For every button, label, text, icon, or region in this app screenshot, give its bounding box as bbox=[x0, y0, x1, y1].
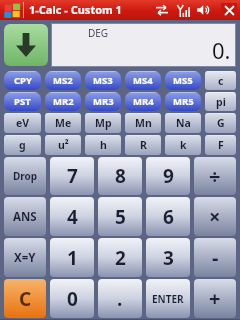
staticText: c bbox=[218, 74, 224, 88]
staticText: 1-Calc - Custom 1 bbox=[29, 2, 122, 17]
staticText: MS2 bbox=[53, 74, 73, 87]
staticText: u² bbox=[58, 138, 69, 152]
staticText: MR2 bbox=[53, 95, 74, 108]
staticText: DEG bbox=[88, 26, 109, 40]
staticText: Me bbox=[55, 116, 72, 130]
button[interactable]: 2 bbox=[98, 238, 142, 277]
staticText: Mn bbox=[135, 116, 152, 130]
button[interactable]: 4 bbox=[50, 197, 94, 236]
button[interactable]: 5 bbox=[98, 197, 142, 236]
staticText: g bbox=[19, 138, 26, 152]
button[interactable]: MR3 bbox=[85, 92, 121, 111]
button[interactable]: MS5 bbox=[165, 71, 201, 90]
button[interactable]: PST bbox=[4, 92, 41, 111]
button[interactable]: MR4 bbox=[125, 92, 161, 111]
button[interactable]: - bbox=[194, 238, 236, 277]
staticText: eV bbox=[16, 116, 30, 130]
staticText: Drop bbox=[13, 169, 38, 183]
staticText: 6 bbox=[163, 204, 174, 230]
button[interactable]: R bbox=[125, 135, 161, 155]
staticText: MR3 bbox=[93, 95, 114, 108]
staticText: 8 bbox=[115, 163, 126, 189]
button[interactable]: 1 bbox=[50, 238, 94, 277]
button[interactable]: × bbox=[194, 197, 236, 236]
button[interactable]: MR2 bbox=[45, 92, 81, 111]
button[interactable]: pi bbox=[205, 92, 236, 111]
button[interactable]: 0 bbox=[50, 279, 94, 318]
button[interactable]: CPY bbox=[4, 71, 41, 90]
button[interactable]: k bbox=[165, 135, 201, 155]
button[interactable]: 7 bbox=[50, 157, 94, 195]
staticText: ENTER bbox=[152, 292, 184, 306]
button[interactable]: 3 bbox=[146, 238, 190, 277]
staticText: 4 bbox=[67, 204, 78, 230]
button[interactable]: Mp bbox=[85, 113, 121, 133]
button[interactable]: + bbox=[194, 279, 236, 318]
staticText: ANS bbox=[13, 209, 37, 225]
button[interactable]: u² bbox=[45, 135, 81, 155]
staticText: k bbox=[180, 138, 187, 152]
staticText: ÷ bbox=[209, 163, 221, 190]
button[interactable]: 8 bbox=[98, 157, 142, 195]
button[interactable]: G bbox=[205, 113, 236, 133]
button[interactable]: MS3 bbox=[85, 71, 121, 90]
button[interactable]: Drop bbox=[4, 157, 46, 195]
button[interactable]: ANS bbox=[4, 197, 46, 236]
staticText: 0. bbox=[212, 35, 231, 65]
staticText: + bbox=[209, 285, 221, 312]
staticText: PST bbox=[14, 95, 31, 108]
staticText: 7 bbox=[67, 163, 78, 189]
button[interactable]: . bbox=[98, 279, 142, 318]
button[interactable]: Me bbox=[45, 113, 81, 133]
button[interactable]: MS4 bbox=[125, 71, 161, 90]
button[interactable]: g bbox=[4, 135, 41, 155]
staticText: 1 bbox=[67, 245, 78, 271]
button[interactable]: C bbox=[4, 279, 46, 318]
staticText: pi bbox=[216, 95, 226, 109]
button[interactable]: ENTER bbox=[146, 279, 190, 318]
button[interactable]: Menu bbox=[4, 24, 48, 66]
staticText: MS4 bbox=[133, 74, 153, 87]
staticText: MR4 bbox=[133, 95, 154, 108]
button[interactable]: MR5 bbox=[165, 92, 201, 111]
button[interactable]: F bbox=[205, 135, 236, 155]
staticText: 3 bbox=[163, 245, 174, 271]
button[interactable]: eV bbox=[4, 113, 41, 133]
staticText: . bbox=[117, 286, 123, 312]
staticText: 2 bbox=[115, 245, 126, 271]
button[interactable]: ÷ bbox=[194, 157, 236, 195]
button[interactable]: X=Y bbox=[4, 238, 46, 277]
button[interactable]: 9 bbox=[146, 157, 190, 195]
button[interactable]: 6 bbox=[146, 197, 190, 236]
staticText: 5 bbox=[115, 204, 126, 230]
button[interactable]: h bbox=[85, 135, 121, 155]
staticText: 9 bbox=[163, 163, 174, 189]
staticText: MR5 bbox=[173, 95, 194, 108]
staticText: F bbox=[218, 138, 224, 152]
staticText: R bbox=[140, 138, 147, 152]
staticText: CPY bbox=[14, 74, 32, 87]
button[interactable]: DEG bbox=[52, 24, 235, 66]
staticText: Na bbox=[176, 116, 191, 130]
staticText: MS3 bbox=[93, 74, 113, 87]
staticText: X=Y bbox=[14, 250, 36, 266]
staticText: × bbox=[209, 203, 221, 230]
staticText: 0 bbox=[67, 286, 78, 312]
staticText: C bbox=[19, 286, 32, 312]
button[interactable]: c bbox=[205, 71, 236, 90]
staticText: Mp bbox=[95, 116, 112, 130]
staticText: G bbox=[217, 116, 225, 130]
button[interactable]: MS2 bbox=[45, 71, 81, 90]
staticText: MS5 bbox=[173, 74, 193, 87]
button[interactable]: Mn bbox=[125, 113, 161, 133]
staticText: h bbox=[100, 138, 107, 152]
staticText: - bbox=[212, 244, 219, 271]
button[interactable]: Na bbox=[165, 113, 201, 133]
button[interactable]: Close bbox=[221, 3, 237, 18]
